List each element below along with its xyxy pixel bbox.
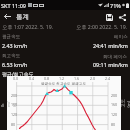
staticText: 09:11 min/km	[93, 61, 128, 68]
staticText: 160	[111, 102, 118, 107]
staticText: 평균속도	[2, 34, 21, 40]
staticText: 페이스	[114, 34, 128, 40]
staticText: 고도 (m)	[119, 98, 130, 107]
staticText: 200	[11, 93, 18, 98]
staticText: 120	[111, 112, 118, 117]
staticText: 오후 1:07 2022. 5. 19.	[2, 23, 65, 30]
staticText: 최고속도	[2, 53, 21, 59]
staticText: 80	[111, 122, 116, 127]
staticText: 1.2	[59, 76, 65, 81]
staticText: 200	[111, 93, 118, 98]
staticText: 24:41 min/km	[93, 42, 128, 49]
staticText: 1.6	[74, 76, 80, 81]
staticText: 71%	[110, 2, 121, 9]
staticText: 120	[11, 112, 18, 117]
button[interactable]: Share	[116, 11, 128, 23]
staticText: 통계	[16, 13, 29, 21]
staticText: 최대 페이스	[103, 53, 128, 59]
staticText: 평균/최고속도	[2, 71, 34, 78]
staticText: 2.0	[90, 76, 96, 81]
staticText: 오후 2:00 2022. 5. 19.	[76, 23, 128, 30]
staticText: SKT 11:09	[1, 2, 26, 9]
staticText: 0.4	[29, 76, 35, 81]
staticText: 80	[11, 122, 16, 127]
staticText: 2.4	[105, 76, 111, 81]
staticText: 평균속도 최고속도 평균고도	[41, 81, 86, 86]
button[interactable]: Back	[2, 11, 13, 22]
staticText: 0.8	[44, 76, 50, 81]
staticText: 160	[11, 102, 18, 107]
staticText: 2.43 km/h	[2, 42, 28, 49]
staticText: 6.53 km/h	[2, 61, 28, 68]
button[interactable]: Save	[103, 11, 115, 23]
staticText: 속도 (km/h)	[0, 100, 18, 107]
staticText: 0.0	[13, 76, 19, 81]
